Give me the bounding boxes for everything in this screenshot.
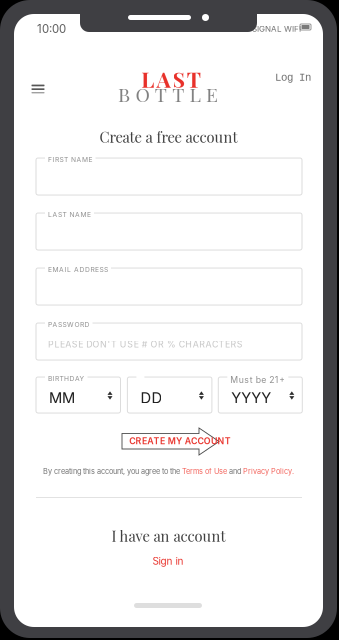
- staticText: EMAIL ADDRESS: [48, 265, 108, 274]
- staticText: LAST NAME: [48, 210, 91, 219]
- staticText: PASSWORD: [48, 320, 89, 329]
- staticText: I have an account: [111, 526, 225, 546]
- staticText: BIRTHDAY: [48, 374, 84, 383]
- button[interactable]: [122, 428, 219, 455]
- staticText: DD: [140, 389, 162, 407]
- staticText: E: [206, 81, 218, 107]
- staticText: YYYY: [231, 389, 271, 407]
- staticText: CREATE MY ACCOUNT: [129, 436, 231, 446]
- staticText: T: [172, 81, 184, 107]
- button[interactable]: Log In: [273, 70, 313, 86]
- staticText: Must be 21+: [230, 374, 285, 385]
- staticText: L: [141, 65, 154, 93]
- button[interactable]: Sign in: [148, 554, 188, 568]
- staticText: Create a free account: [99, 127, 237, 147]
- staticText: By creating this account, you agree to t…: [43, 467, 182, 476]
- staticText: Sign in: [152, 555, 183, 567]
- staticText: MM: [49, 389, 75, 407]
- button[interactable]: Menu: [26, 78, 50, 100]
- staticText: T: [155, 81, 167, 107]
- staticText: S: [173, 65, 185, 93]
- staticText: SIGNAL WIFI: [252, 24, 301, 34]
- staticText: Privacy Policy.: [243, 467, 294, 476]
- staticText: L: [190, 81, 201, 107]
- staticText: O: [135, 81, 149, 107]
- staticText: and: [227, 467, 243, 476]
- staticText: FIRST NAME: [48, 155, 92, 164]
- staticText: Terms of Use: [182, 467, 227, 476]
- staticText: 10:00: [37, 22, 66, 36]
- staticText: PLEASE DON'T USE # OR % CHARACTERS: [48, 339, 243, 350]
- staticText: Log In: [275, 72, 311, 84]
- staticText: B: [118, 81, 130, 107]
- staticText: A: [156, 65, 170, 93]
- staticText: T: [187, 65, 201, 93]
